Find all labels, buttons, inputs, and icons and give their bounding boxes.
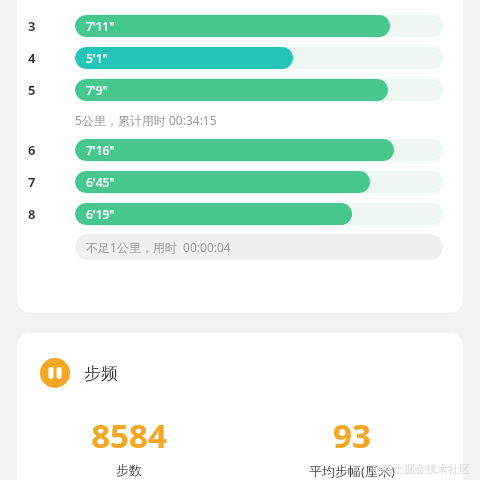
staticText: 7'16" bbox=[86, 142, 115, 158]
other: Cadence bbox=[40, 358, 70, 388]
staticText: 5公里，累计用时 00:34:15 bbox=[75, 112, 217, 128]
button[interactable]: 7 bbox=[17, 166, 446, 198]
button[interactable]: Cadence bbox=[40, 358, 118, 388]
button[interactable]: 4 bbox=[17, 42, 446, 74]
staticText: 步数 bbox=[116, 462, 142, 478]
button[interactable]: 不足1公里，用时 00:00:04 bbox=[75, 234, 443, 260]
button[interactable]: 6 bbox=[17, 134, 446, 166]
button[interactable]: 5 bbox=[17, 74, 446, 106]
staticText: 5 bbox=[28, 81, 36, 99]
staticText: 平均步幅(厘米) bbox=[309, 462, 395, 480]
staticText: 3 bbox=[28, 17, 36, 35]
button[interactable]: 93 bbox=[240, 413, 463, 480]
staticText: 7 bbox=[28, 173, 36, 191]
staticText: 不足1公里，用时 00:00:04 bbox=[86, 239, 231, 255]
staticText: 4 bbox=[28, 49, 36, 67]
staticText: 5'1" bbox=[86, 50, 108, 66]
staticText: 6'19" bbox=[86, 206, 115, 222]
button[interactable]: 8 bbox=[17, 198, 446, 230]
staticText: 6 bbox=[28, 141, 36, 159]
staticText: @稀土掘金技术社区 bbox=[372, 461, 470, 476]
staticText: 步频 bbox=[84, 363, 118, 384]
staticText: 7'9" bbox=[86, 82, 108, 98]
staticText: 6'45" bbox=[86, 174, 115, 190]
staticText: 93 bbox=[333, 413, 371, 458]
button[interactable]: 8584 bbox=[17, 413, 240, 478]
staticText: 7'11" bbox=[86, 18, 115, 34]
staticText: 8584 bbox=[91, 413, 167, 458]
button[interactable]: 3 bbox=[17, 10, 446, 42]
staticText: 8 bbox=[28, 205, 36, 223]
